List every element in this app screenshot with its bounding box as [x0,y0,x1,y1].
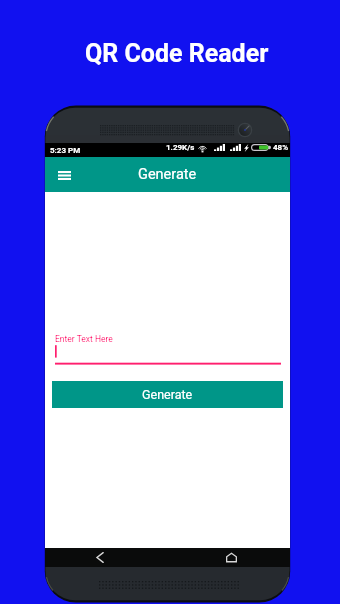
staticText: Generate [138,166,197,183]
button[interactable]: Open navigation menu [53,164,75,186]
staticText: QR Code Reader [85,39,269,68]
staticText: 48% [273,143,289,152]
button[interactable]: Generate [52,381,283,408]
button[interactable]: Home [222,548,241,567]
button[interactable]: Back [90,548,109,567]
staticText: 1.29K/s [166,143,195,152]
staticText: Enter Text Here [55,334,113,344]
button[interactable]: Enter Text Here [55,335,291,371]
staticText: Generate [142,387,193,402]
staticText: 5:23 PM [50,146,81,155]
